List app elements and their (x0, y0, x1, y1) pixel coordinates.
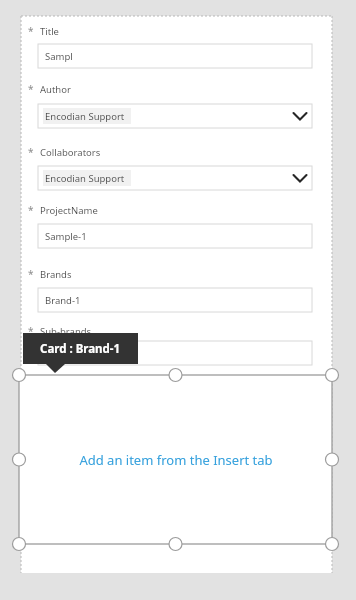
staticText: Encodian Support (45, 110, 125, 123)
staticText: Brand-1 (45, 294, 81, 307)
staticText: Sampl (45, 50, 73, 63)
staticText: Collaborators (40, 146, 101, 159)
staticText: Brands (40, 268, 72, 281)
staticText: Card : Brand-1 (40, 341, 121, 357)
staticText: ProjectName (40, 204, 98, 217)
staticText: Add an item from the Insert tab (79, 451, 273, 469)
staticText: * (28, 82, 34, 96)
staticText: * (28, 24, 34, 38)
staticText: Title (40, 25, 59, 38)
button[interactable] (38, 341, 312, 365)
staticText: Encodian Support (45, 172, 125, 185)
button[interactable]: Sampl (38, 44, 312, 68)
staticText: Sub-brands (40, 325, 92, 338)
button[interactable]: Brand-1 (38, 288, 312, 312)
button[interactable]: Sample-1 (38, 224, 312, 248)
staticText: * (28, 203, 34, 217)
button[interactable]: Encodian Support (38, 104, 312, 128)
staticText: * (28, 145, 34, 159)
button[interactable]: Encodian Support (38, 166, 312, 190)
staticText: Author (40, 83, 71, 96)
staticText: * (28, 267, 34, 281)
button[interactable]: Add an item from the Insert tab (19, 375, 332, 544)
other: Card : Brand-1 tooltip (23, 333, 138, 364)
staticText: Sample-1 (45, 230, 87, 243)
staticText: * (28, 324, 34, 338)
